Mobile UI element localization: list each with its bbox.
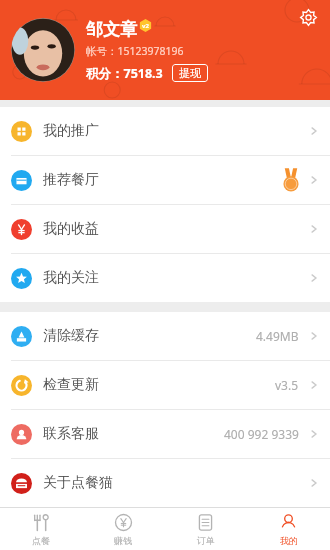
button[interactable]: 我的收益 bbox=[0, 205, 330, 253]
button[interactable]: 我的 bbox=[247, 508, 330, 550]
button[interactable]: 关于点餐猫 bbox=[0, 459, 330, 507]
staticText: 提现 bbox=[179, 66, 201, 80]
button[interactable]: 提现 bbox=[172, 64, 208, 82]
button[interactable]: 赚钱 bbox=[82, 508, 164, 550]
staticText: 帐号：15123978196 bbox=[86, 44, 184, 58]
staticText: 联系客服 bbox=[43, 425, 99, 443]
button[interactable]: Profile photo bbox=[11, 18, 75, 82]
staticText: 积分：7518.3 bbox=[86, 65, 163, 82]
button[interactable]: 点餐 bbox=[0, 508, 82, 550]
staticText: 检查更新 bbox=[43, 376, 99, 394]
button[interactable]: 清除缓存 bbox=[0, 312, 330, 360]
staticText: 我的 bbox=[280, 535, 298, 546]
button[interactable]: 我的关注 bbox=[0, 254, 330, 302]
button[interactable]: 检查更新 bbox=[0, 361, 330, 409]
staticText: 清除缓存 bbox=[43, 327, 99, 345]
button[interactable]: Settings bbox=[295, 4, 321, 30]
staticText: 4.49MB bbox=[256, 328, 299, 344]
staticText: 点餐 bbox=[32, 535, 50, 546]
button[interactable]: 联系客服 bbox=[0, 410, 330, 458]
staticText: 我的关注 bbox=[43, 269, 99, 287]
staticText: 400 992 9339 bbox=[224, 426, 299, 442]
staticText: 我的收益 bbox=[43, 220, 99, 238]
staticText: 邹文章 bbox=[86, 19, 137, 40]
staticText: 我的推广 bbox=[43, 122, 99, 140]
button[interactable]: 订单 bbox=[164, 508, 247, 550]
staticText: v3.5 bbox=[275, 377, 299, 393]
staticText: 订单 bbox=[197, 535, 215, 546]
staticText: 关于点餐猫 bbox=[43, 474, 113, 492]
staticText: 赚钱 bbox=[114, 535, 132, 546]
staticText: v2 bbox=[142, 22, 149, 30]
button[interactable]: 我的推广 bbox=[0, 107, 330, 155]
button[interactable]: 推荐餐厅 bbox=[0, 156, 330, 204]
staticText: 推荐餐厅 bbox=[43, 171, 99, 189]
